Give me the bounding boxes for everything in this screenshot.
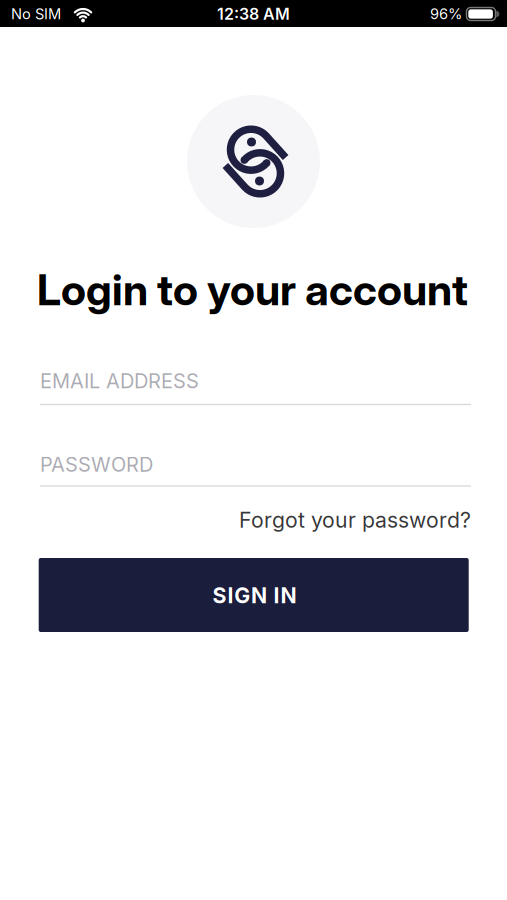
staticText: Login to your account <box>37 264 468 315</box>
staticText: PASSWORD <box>40 453 153 476</box>
staticText: SIGN IN <box>213 583 296 608</box>
staticText: Forgot your password? <box>239 507 471 533</box>
staticText: 96% <box>430 5 462 23</box>
staticText: 12:38 AM <box>217 5 290 23</box>
staticText: EMAIL ADDRESS <box>40 369 199 393</box>
staticText: No SIM <box>11 5 61 23</box>
